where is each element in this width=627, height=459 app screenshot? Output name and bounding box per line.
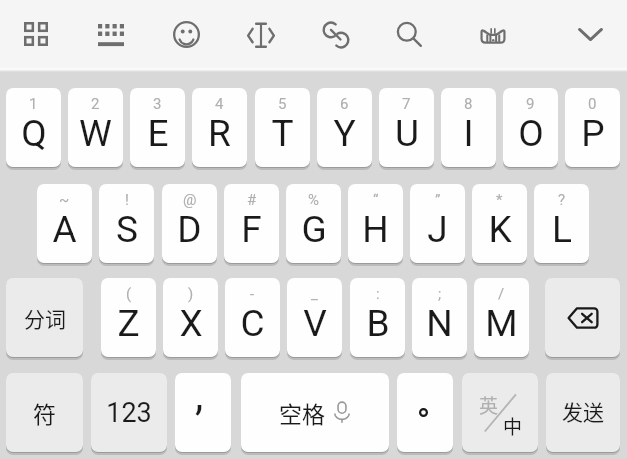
staticText: # [247, 191, 257, 209]
staticText: T [271, 112, 294, 155]
staticText: W [79, 112, 112, 155]
staticText: I [463, 112, 474, 155]
button[interactable]: K [472, 184, 527, 263]
staticText: R [208, 112, 231, 155]
button[interactable]: I [441, 88, 496, 167]
button[interactable]: Backspace [545, 278, 620, 357]
button[interactable]: N [412, 278, 467, 357]
staticText: H [362, 208, 389, 251]
button[interactable]: A [37, 184, 92, 263]
staticText: 3 [153, 95, 162, 113]
staticText: ( [126, 285, 132, 303]
button[interactable]: U [379, 88, 434, 167]
staticText: 分词 [24, 303, 66, 333]
staticText: ; [438, 285, 442, 303]
staticText: 中 [503, 412, 523, 440]
button[interactable]: H [348, 184, 403, 263]
button[interactable]: Clipboard [310, 9, 362, 61]
button[interactable]: J [410, 184, 465, 263]
button[interactable]: Y [317, 88, 372, 167]
button[interactable]: Comma [175, 373, 231, 452]
button[interactable]: W [68, 88, 123, 167]
staticText: “ [373, 191, 379, 209]
staticText: 2 [91, 95, 100, 113]
button[interactable]: Period [397, 373, 453, 452]
staticText: 5 [278, 95, 287, 113]
staticText: 英 [479, 391, 499, 419]
staticText: _ [311, 285, 318, 303]
staticText: Z [117, 302, 140, 345]
staticText: 发送 [562, 396, 604, 426]
button[interactable]: Search [384, 9, 435, 60]
staticText: M [485, 302, 518, 345]
staticText: ” [435, 191, 441, 209]
staticText: 9 [526, 95, 535, 113]
staticText: % [308, 191, 319, 209]
button[interactable]: 123 [91, 373, 167, 452]
staticText: X [179, 302, 203, 345]
button[interactable]: Space [241, 373, 389, 452]
staticText: O [518, 112, 544, 155]
button[interactable]: 分词 [6, 278, 83, 357]
staticText: 1 [29, 95, 38, 113]
staticText: N [426, 302, 453, 345]
button[interactable]: E [130, 88, 185, 167]
button[interactable]: Language [462, 373, 538, 452]
staticText: / [498, 285, 505, 303]
button[interactable]: S [99, 184, 154, 263]
button[interactable]: 发送 [546, 373, 620, 452]
staticText: * [496, 191, 503, 209]
staticText: S [116, 208, 138, 251]
staticText: K [488, 208, 512, 251]
button[interactable]: L [534, 184, 589, 263]
button[interactable]: B [350, 278, 405, 357]
button[interactable]: Promo [468, 15, 518, 56]
button[interactable]: C [225, 278, 280, 357]
button[interactable]: G [286, 184, 341, 263]
staticText: U [395, 112, 419, 155]
staticText: 4 [215, 95, 224, 113]
staticText: ~ [59, 191, 70, 209]
button[interactable]: Collapse [566, 14, 615, 55]
staticText: J [427, 208, 448, 251]
staticText: , [195, 373, 204, 420]
button[interactable]: Cursor [235, 9, 287, 61]
staticText: 6 [340, 95, 349, 113]
staticText: E [147, 112, 169, 155]
button[interactable]: R [192, 88, 247, 167]
button[interactable]: O [503, 88, 558, 167]
staticText: L [552, 208, 572, 251]
button[interactable]: P [565, 88, 620, 167]
button[interactable]: Emoji [161, 9, 212, 60]
staticText: Y [333, 112, 356, 155]
button[interactable]: Q [6, 88, 61, 167]
staticText: P [581, 112, 605, 155]
staticText: F [241, 208, 262, 251]
staticText: Q [21, 112, 47, 155]
staticText: ) [188, 285, 194, 303]
button[interactable]: F [224, 184, 279, 263]
staticText: @ [183, 191, 197, 209]
staticText: ? [558, 191, 566, 209]
staticText: B [366, 302, 390, 345]
staticText: D [177, 208, 202, 251]
button[interactable]: Grid [12, 10, 60, 58]
staticText: 7 [402, 95, 411, 113]
staticText: 空格 [279, 396, 325, 429]
button[interactable]: X [163, 278, 218, 357]
button[interactable]: Keyboard [86, 12, 136, 62]
staticText: - [250, 285, 255, 303]
staticText: ! [125, 191, 129, 209]
button[interactable]: T [255, 88, 310, 167]
button[interactable]: Z [101, 278, 156, 357]
staticText: V [303, 302, 327, 345]
staticText: 123 [106, 397, 152, 429]
staticText: 符 [33, 396, 56, 429]
button[interactable]: 符 [6, 373, 83, 452]
button[interactable]: M [474, 278, 529, 357]
staticText: 8 [464, 95, 473, 113]
button[interactable]: D [162, 184, 217, 263]
staticText: G [301, 208, 327, 251]
button[interactable]: V [287, 278, 342, 357]
staticText: C [240, 302, 265, 345]
